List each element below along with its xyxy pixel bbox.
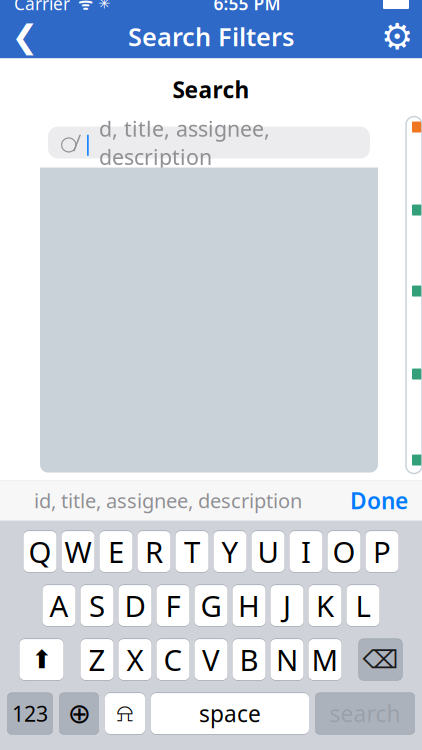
button[interactable]: A xyxy=(42,585,75,627)
button[interactable]: T xyxy=(175,531,208,573)
staticText: K xyxy=(316,586,334,625)
button[interactable]: Shift xyxy=(19,639,63,681)
button[interactable]: X xyxy=(118,639,151,681)
staticText: T xyxy=(184,532,200,571)
staticText: S xyxy=(89,586,105,625)
staticText: L xyxy=(355,586,370,625)
staticText: Q xyxy=(28,532,51,571)
button[interactable]: R xyxy=(137,531,170,573)
button[interactable]: K xyxy=(308,585,341,627)
button[interactable]: Back xyxy=(0,14,50,58)
staticText: I xyxy=(301,532,311,571)
staticText: ✳ xyxy=(93,0,110,12)
staticText: G xyxy=(200,586,221,625)
staticText: E xyxy=(108,532,124,571)
staticText: V xyxy=(202,640,220,679)
staticText: H xyxy=(238,586,260,625)
staticText: | xyxy=(82,128,94,157)
staticText: B xyxy=(239,640,258,679)
staticText: V xyxy=(202,640,220,679)
staticText: A xyxy=(49,586,68,625)
button[interactable]: I xyxy=(289,531,322,573)
button[interactable]: space xyxy=(151,693,309,735)
staticText: F xyxy=(165,586,180,625)
button[interactable]: Settings xyxy=(372,14,422,58)
button[interactable]: search xyxy=(315,693,415,735)
staticText: M xyxy=(311,640,338,679)
button[interactable]: C xyxy=(156,639,189,681)
staticText: d, title, assignee, description xyxy=(99,114,270,171)
staticText: S xyxy=(89,586,105,625)
staticText: Q xyxy=(28,532,51,571)
staticText: L xyxy=(355,586,370,625)
button[interactable]: Z xyxy=(80,639,113,681)
button[interactable]: O xyxy=(327,531,360,573)
button[interactable]: V xyxy=(194,639,227,681)
staticText: 6:55 PM xyxy=(213,0,280,15)
staticText: ⬆ xyxy=(31,645,52,674)
button[interactable]: B xyxy=(232,639,265,681)
staticText: space xyxy=(199,698,261,729)
staticText: ⊕ xyxy=(67,698,90,729)
staticText: R xyxy=(145,532,163,571)
staticText: C xyxy=(163,640,182,679)
button[interactable]: Done xyxy=(336,481,422,521)
button[interactable]: H xyxy=(232,585,265,627)
staticText: ❮ xyxy=(11,18,38,55)
staticText: X xyxy=(126,640,143,679)
button[interactable]: P xyxy=(365,531,398,573)
staticText: X xyxy=(126,640,143,679)
staticText: ⍾ xyxy=(116,701,133,726)
staticText: F xyxy=(165,586,180,625)
staticText: G xyxy=(200,586,221,625)
button[interactable]: 123 xyxy=(7,693,53,735)
staticText: U xyxy=(257,532,278,571)
staticText: ⚙ xyxy=(381,16,413,57)
staticText: Search Filters xyxy=(128,20,294,53)
button[interactable]: D xyxy=(118,585,151,627)
staticText: H xyxy=(238,586,260,625)
staticText: ⍾ xyxy=(116,701,133,726)
staticText: 123 xyxy=(12,699,48,728)
staticText: ○̸ xyxy=(60,129,77,156)
button[interactable]: W xyxy=(61,531,94,573)
staticText: Carrier xyxy=(14,0,70,15)
button[interactable]: L xyxy=(346,585,379,627)
button[interactable]: Q xyxy=(23,531,56,573)
staticText: D xyxy=(124,586,145,625)
button[interactable]: G xyxy=(194,585,227,627)
staticText: I xyxy=(301,532,311,571)
staticText: Y xyxy=(221,532,238,571)
button[interactable]: J xyxy=(270,585,303,627)
button[interactable]: M xyxy=(308,639,341,681)
staticText: P xyxy=(373,532,391,571)
staticText: D xyxy=(124,586,145,625)
staticText: Y xyxy=(221,532,238,571)
staticText: ⌫ xyxy=(362,645,398,674)
button[interactable]: F xyxy=(156,585,189,627)
button[interactable]: Delete xyxy=(358,639,402,681)
staticText: N xyxy=(276,640,298,679)
staticText: ⌫ xyxy=(362,645,398,674)
staticText: T xyxy=(184,532,200,571)
button[interactable]: Dictate xyxy=(105,693,145,735)
staticText: B xyxy=(239,640,258,679)
staticText: ⊕ xyxy=(67,698,90,729)
button[interactable]: Y xyxy=(213,531,246,573)
staticText: U xyxy=(257,532,278,571)
staticText: K xyxy=(316,586,334,625)
button[interactable]: U xyxy=(251,531,284,573)
button[interactable]: N xyxy=(270,639,303,681)
button[interactable]: Next keyboard xyxy=(59,693,99,735)
staticText: O xyxy=(332,532,355,571)
button[interactable]: S xyxy=(80,585,113,627)
staticText: A xyxy=(49,586,68,625)
staticText: 123 xyxy=(12,699,48,728)
staticText: P xyxy=(373,532,391,571)
staticText: C xyxy=(163,640,182,679)
button[interactable]: E xyxy=(99,531,132,573)
staticText: id, title, assignee, description xyxy=(34,487,302,514)
staticText: W xyxy=(64,532,91,571)
staticText: J xyxy=(283,586,291,625)
staticText: O xyxy=(332,532,355,571)
